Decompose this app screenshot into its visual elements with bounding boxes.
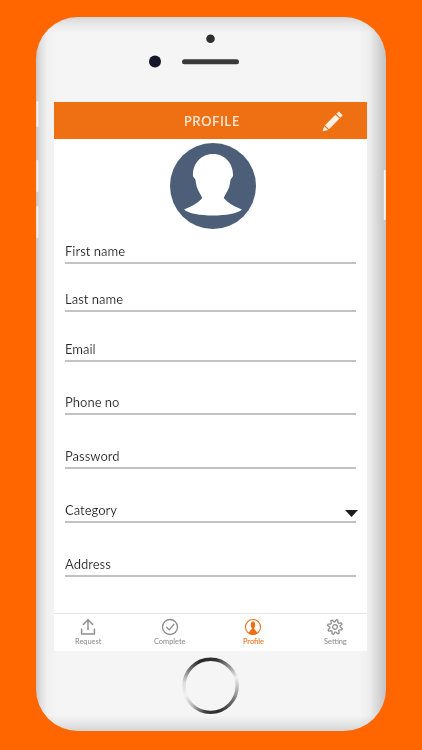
button[interactable]: Last name <box>65 285 356 312</box>
button[interactable]: Setting <box>296 613 374 651</box>
staticText: Phone no <box>65 394 120 410</box>
button[interactable]: Request <box>49 613 127 651</box>
staticText: Last name <box>65 291 124 307</box>
staticText: First name <box>65 243 126 259</box>
button[interactable]: Password <box>65 442 356 469</box>
button[interactable]: Email <box>65 335 356 362</box>
staticText: Address <box>65 556 111 572</box>
button[interactable]: Profile photo <box>170 143 256 229</box>
button[interactable]: Phone no <box>65 388 356 415</box>
staticText: Password <box>65 448 120 464</box>
staticText: Email <box>65 341 96 357</box>
button[interactable]: Profile <box>214 613 292 651</box>
button[interactable]: First name <box>65 237 356 264</box>
staticText: Profile <box>243 637 264 646</box>
staticText: Complete <box>154 637 186 646</box>
button[interactable]: Category <box>65 496 356 523</box>
staticText: Category <box>65 502 118 518</box>
button[interactable]: Complete <box>131 613 209 651</box>
button[interactable]: Edit profile <box>316 107 344 135</box>
staticText: PROFILE <box>184 113 241 128</box>
staticText: Setting <box>324 637 347 646</box>
staticText: Request <box>75 637 102 646</box>
button[interactable]: Address <box>65 550 356 577</box>
